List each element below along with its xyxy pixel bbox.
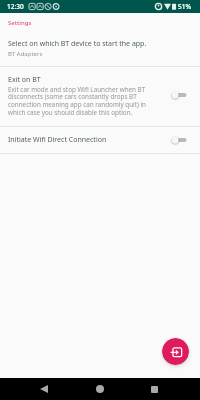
staticText: BT Adapters <box>8 50 43 58</box>
button[interactable]: Back <box>35 380 53 398</box>
button[interactable]: Exit on BT <box>0 65 200 124</box>
button[interactable]: Start <box>162 338 189 365</box>
staticText: Initiate Wifi Direct Connection <box>8 135 171 145</box>
staticText: 12:30 <box>7 2 24 11</box>
staticText: Exit car mode and stop Wifi Launcher whe… <box>8 85 148 117</box>
button[interactable]: Initiate Wifi Direct Connection <box>0 127 200 153</box>
button[interactable]: Recents <box>145 380 163 398</box>
staticText: Exit on BT <box>8 75 41 85</box>
button[interactable]: Select on which BT device to start the a… <box>0 36 200 66</box>
staticText: Settings <box>8 19 32 27</box>
staticText: 51% <box>178 2 191 11</box>
button[interactable]: Home <box>91 380 109 398</box>
staticText: Select on which BT device to start the a… <box>8 39 147 49</box>
